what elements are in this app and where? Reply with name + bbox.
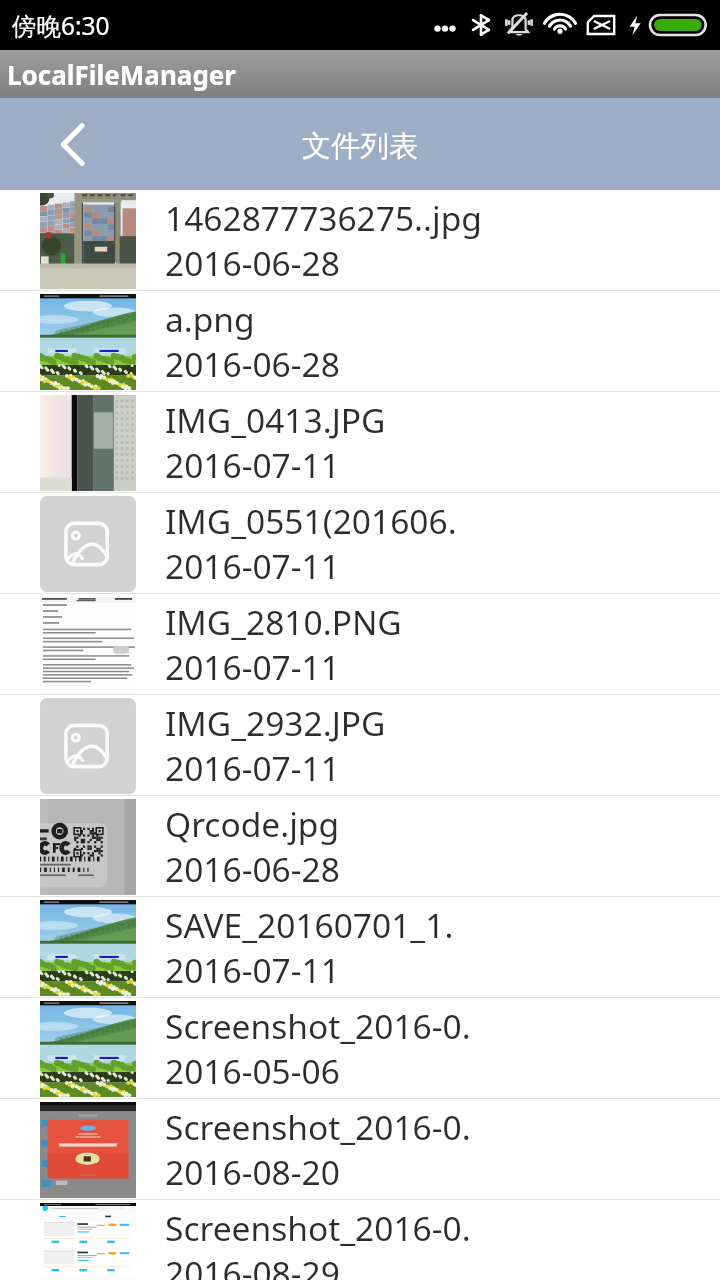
staticText: Screenshot_2016-0. [165,1104,471,1150]
button[interactable]: Back [0,98,122,190]
staticText: IMG_2810.PNG [165,599,402,645]
staticText: 文件列表 [302,128,418,165]
button[interactable]: SAVE_20160701_1. [0,897,720,997]
button[interactable]: Screenshot_2016-0. [0,998,720,1098]
staticText: IMG_2932.JPG [165,700,386,746]
staticText: 2016-06-28 [165,341,340,387]
staticText: 2016-07-11 [165,947,340,993]
staticText: 2016-08-29 [165,1250,340,1280]
button[interactable]: Screenshot_2016-0. [0,1099,720,1199]
staticText: 2016-06-28 [165,240,340,286]
button[interactable]: 1462877736275..jpg [0,190,720,290]
button[interactable]: IMG_2932.JPG [0,695,720,795]
staticText: 2016-05-06 [165,1048,340,1094]
staticText: Screenshot_2016-0. [165,1003,471,1049]
button[interactable]: IMG_0551(201606. [0,493,720,593]
staticText: 傍晚6:30 [12,9,110,42]
staticText: 1462877736275..jpg [165,195,482,241]
staticText: 2016-08-20 [165,1149,340,1195]
staticText: Screenshot_2016-0. [165,1205,471,1251]
button[interactable]: Qrcode.jpg [0,796,720,896]
staticText: Qrcode.jpg [165,801,339,847]
staticText: 2016-07-11 [165,644,340,690]
button[interactable]: IMG_2810.PNG [0,594,720,694]
staticText: 2016-07-11 [165,442,340,488]
staticText: IMG_0413.JPG [165,397,386,443]
button[interactable]: a.png [0,291,720,391]
staticText: a.png [165,296,255,342]
staticText: IMG_0551(201606. [165,498,457,544]
staticText: 2016-07-11 [165,745,340,791]
staticText: LocalFileManager [7,57,236,92]
button[interactable]: Screenshot_2016-0. [0,1200,720,1280]
staticText: 2016-07-11 [165,543,340,589]
staticText: SAVE_20160701_1. [165,902,454,948]
staticText: 2016-06-28 [165,846,340,892]
button[interactable]: IMG_0413.JPG [0,392,720,492]
